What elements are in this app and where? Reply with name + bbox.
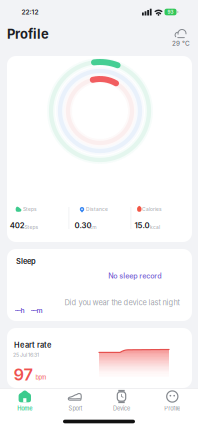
button[interactable]: Profile [152, 387, 192, 415]
staticText: 15.0 [134, 221, 149, 230]
staticText: bpm [35, 374, 46, 381]
staticText: Sleep [16, 257, 36, 266]
staticText: Calories [142, 206, 162, 212]
staticText: 402 [10, 221, 25, 230]
staticText: km [89, 224, 96, 230]
staticText: Heart rate [14, 340, 51, 350]
staticText: 93 [167, 9, 173, 15]
staticText: ––m [30, 306, 42, 315]
staticText: 97 [13, 365, 33, 385]
button[interactable]: Home [5, 387, 45, 415]
button[interactable]: Device [101, 387, 141, 415]
staticText: Steps [23, 206, 37, 212]
staticText: 22:12 [21, 8, 38, 16]
staticText: Sport [69, 405, 83, 412]
staticText: kcal [150, 224, 160, 230]
staticText: Steps [24, 224, 38, 230]
staticText: Home [17, 405, 32, 412]
staticText: 0.30 [74, 221, 91, 230]
button[interactable] [7, 328, 192, 388]
staticText: No sleep record [108, 272, 161, 280]
staticText: Profile [164, 405, 180, 412]
staticText: Did you wear the device last night [64, 298, 179, 307]
staticText: 25 Jul 16:31 [13, 352, 39, 358]
staticText: Device [113, 405, 130, 412]
staticText: Profile [7, 26, 49, 42]
button[interactable] [7, 249, 192, 321]
staticText: Distance [86, 206, 108, 212]
button[interactable] [7, 56, 192, 242]
staticText: 29 °C [172, 40, 190, 47]
staticText: ––h [14, 306, 24, 315]
button[interactable]: 29 °C [167, 24, 195, 50]
button[interactable]: Sport [56, 387, 96, 415]
